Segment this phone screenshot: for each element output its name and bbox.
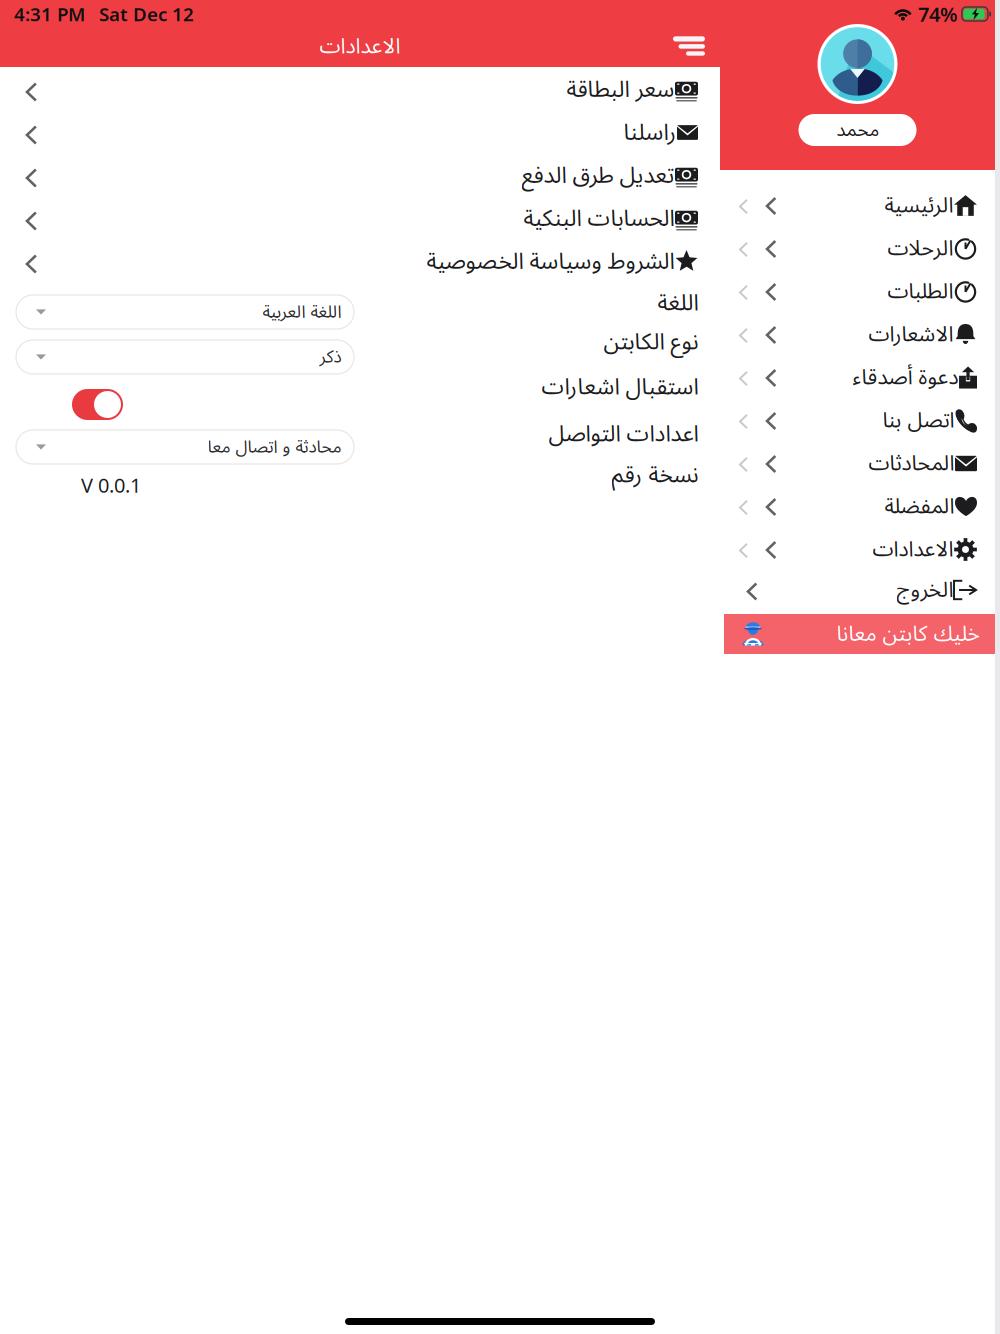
button[interactable]: سعر البطاقة [0,68,720,111]
button[interactable]: V 0.0.1 [81,475,141,495]
staticText: الاعدادات [872,527,953,572]
button[interactable]: خليك كابتن معانا [724,614,995,654]
staticText: استقبال اشعارات [541,363,698,411]
button[interactable]: المحادثات [720,442,995,485]
button[interactable]: اتصل بنا [720,399,995,442]
staticText: ذكر [319,339,341,375]
staticText: 74% [918,1,958,27]
button[interactable]: الاعدادات [720,528,995,571]
button[interactable]: محمد [798,114,916,146]
staticText: الخروج [896,567,953,613]
button[interactable]: تعديل طرق الدفع [0,154,720,197]
staticText: المحادثات [868,441,954,486]
button[interactable]: راسلنا [0,111,720,154]
staticText: خليك كابتن معانا [836,611,980,657]
staticText: نوع الكابتن [603,318,698,366]
staticText: محادثة و اتصال معا [207,429,341,465]
button[interactable]: ذكر [16,340,354,374]
button[interactable]: الشروط وسياسة الخصوصية [0,240,720,283]
button[interactable]: محادثة و اتصال معا [16,430,354,464]
staticText: اتصل بنا [882,398,954,443]
staticText: V 0.0.1 [81,472,141,498]
staticText: محمد [836,110,879,150]
staticText: 4:31 PM [14,2,85,26]
staticText: المفضلة [884,484,954,529]
staticText: اللغة [657,279,698,327]
button[interactable]: المفضلة [720,485,995,528]
staticText: الرئيسية [884,183,953,228]
button[interactable]: الاشعارات [720,313,995,356]
staticText: الشروط وسياسة الخصوصية [426,238,674,285]
staticText: دعوة أصدقاء [852,355,958,400]
staticText: اللغة العربية [262,294,341,330]
staticText: اعدادات التواصل [548,410,698,458]
staticText: Sat Dec 12 [99,2,194,26]
button[interactable]: Menu [665,28,713,69]
button[interactable]: الطلبات [720,270,995,313]
button[interactable]: دعوة أصدقاء [720,356,995,399]
button[interactable]: استقبال اشعارات [72,389,123,420]
button[interactable]: الحسابات البنكية [0,197,720,240]
staticText: تعديل طرق الدفع [521,152,674,199]
staticText: الرحلات [887,226,953,271]
staticText: راسلنا [623,109,676,156]
button[interactable]: اللغة العربية [16,295,354,329]
button[interactable]: الرئيسية [720,184,995,227]
staticText: الطلبات [887,269,953,314]
button[interactable]: الخروج [720,571,995,609]
button[interactable]: الرحلات [720,227,995,270]
staticText: الاعدادات [319,24,400,69]
staticText: نسخة رقم [611,451,698,499]
staticText: الحسابات البنكية [523,195,674,242]
staticText: سعر البطاقة [566,66,674,113]
staticText: الاشعارات [868,312,953,357]
